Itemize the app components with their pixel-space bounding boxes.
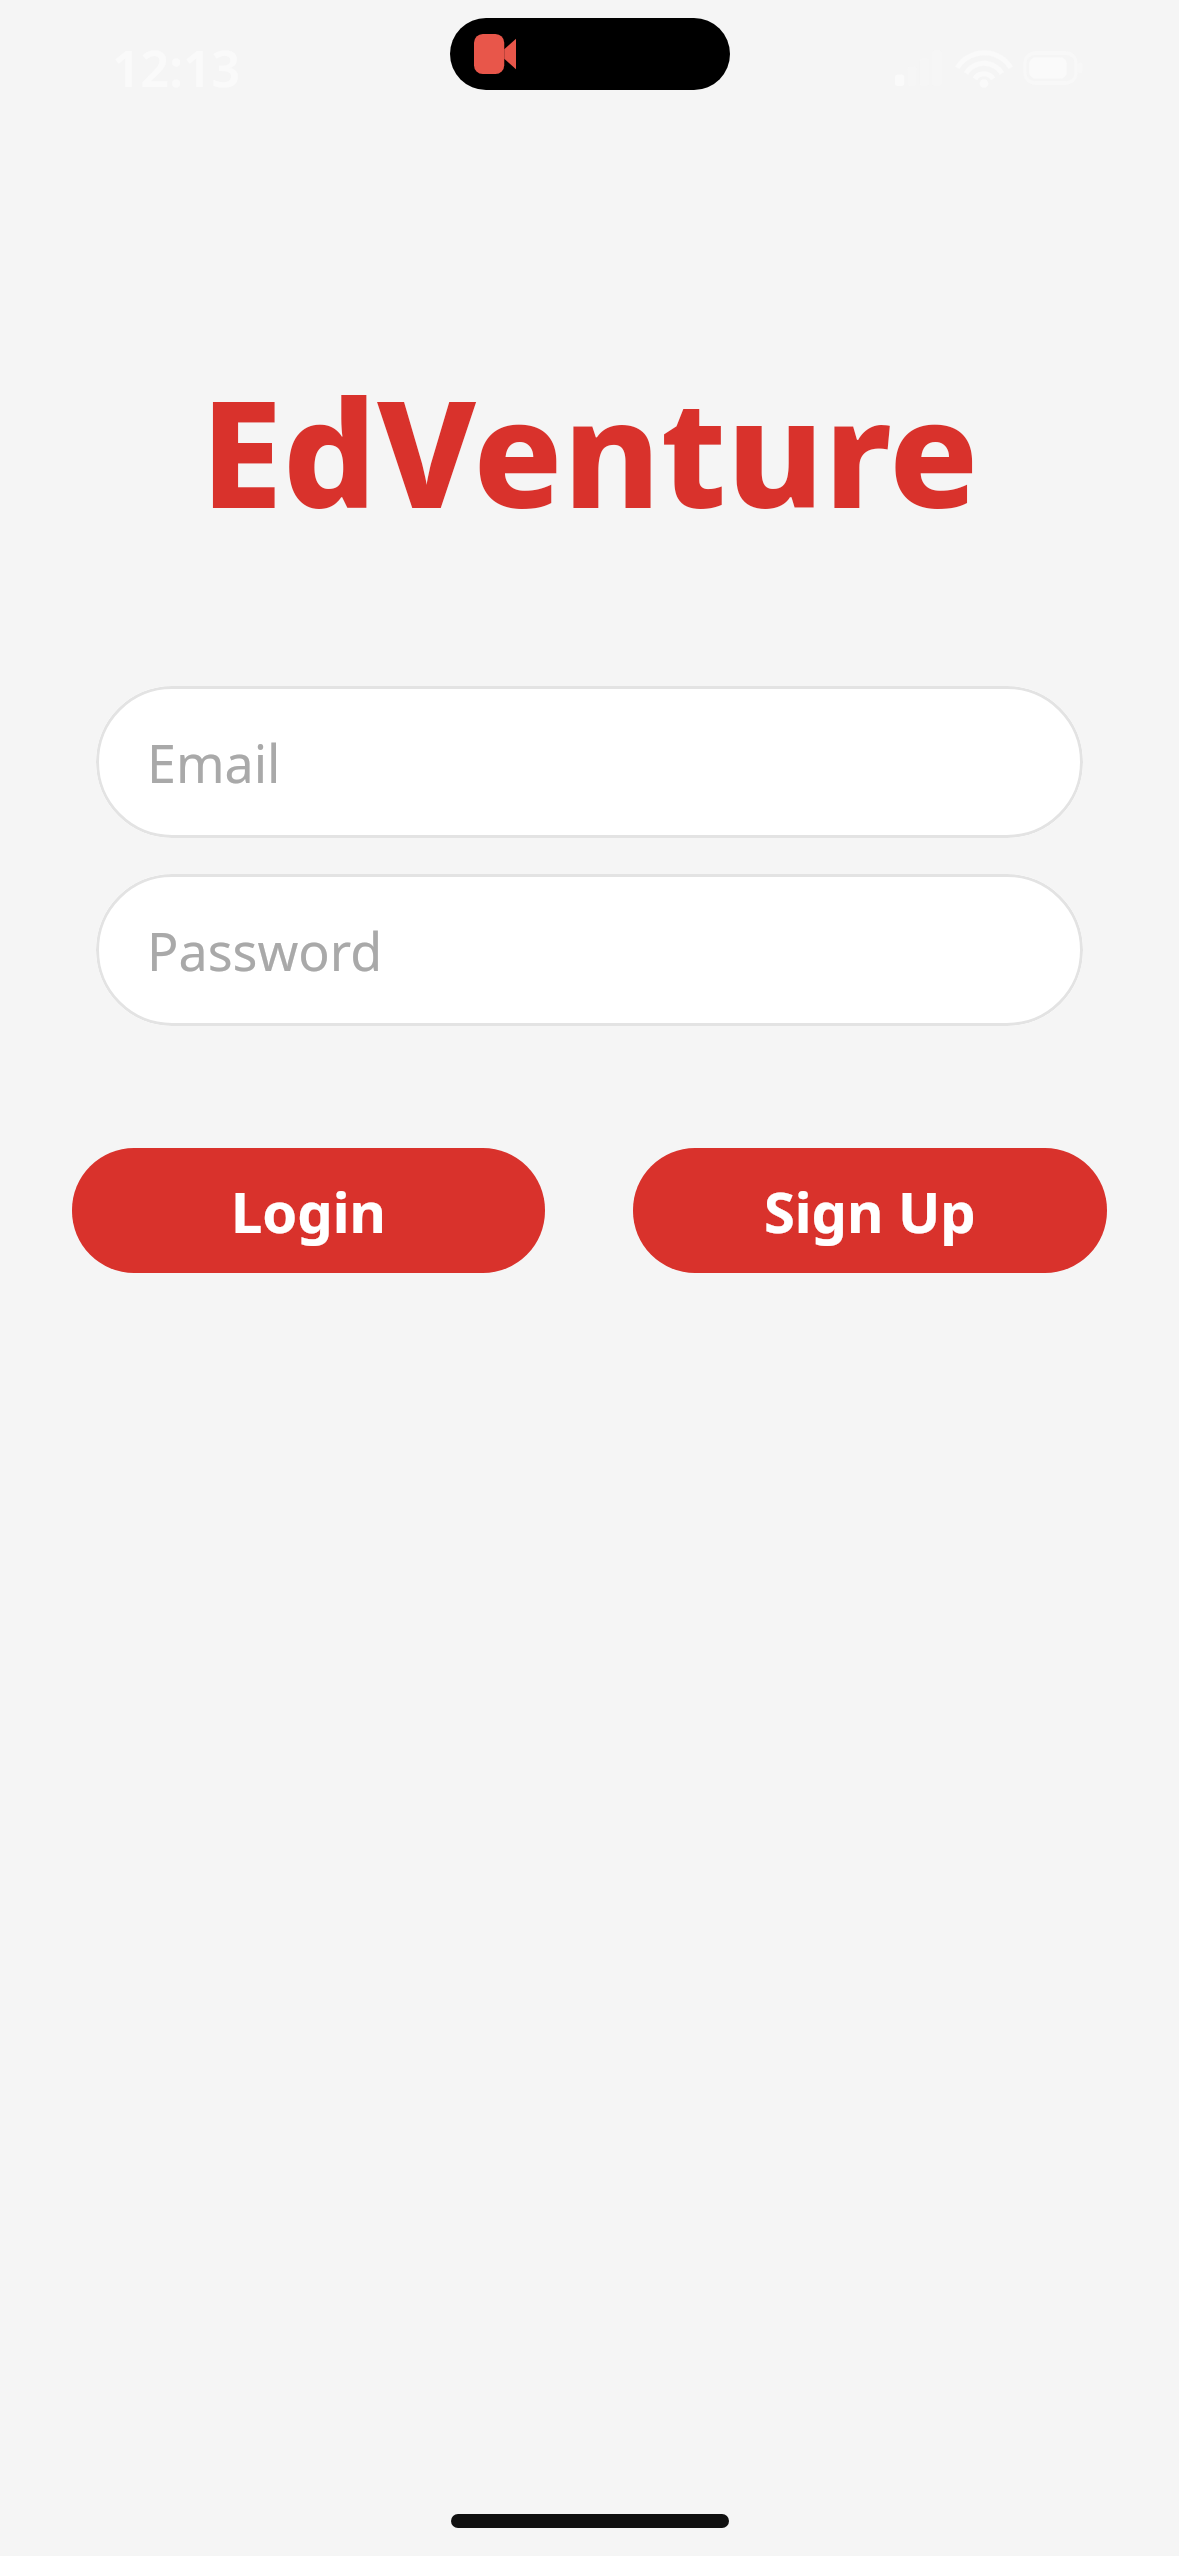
button[interactable]: Email (96, 686, 1083, 838)
button[interactable]: Sign Up (633, 1148, 1107, 1273)
staticText: Password (147, 915, 383, 986)
button[interactable]: Login (72, 1148, 545, 1273)
staticText: Sign Up (764, 1173, 976, 1249)
staticText: Email (147, 727, 281, 798)
other: Recording (474, 34, 516, 74)
button[interactable]: Password (96, 874, 1083, 1026)
staticText: Login (231, 1173, 386, 1249)
staticText: EdVenture (0, 350, 1179, 552)
